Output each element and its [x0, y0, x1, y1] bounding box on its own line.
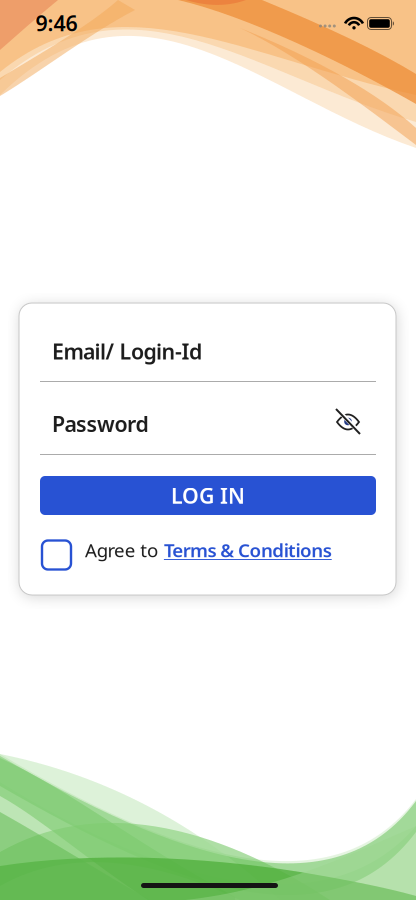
- staticText: Agree to: [85, 537, 158, 562]
- staticText: LOG IN: [171, 481, 245, 510]
- button[interactable]: LOG IN: [40, 476, 376, 515]
- button[interactable]: Email/ Login-Id text field: [40, 336, 376, 382]
- staticText: Password: [52, 409, 148, 438]
- staticText: Terms & Conditions: [164, 537, 332, 562]
- button[interactable]: Agree to Terms & Conditions checkbox: [42, 540, 71, 569]
- button[interactable]: Terms & Conditions: [164, 537, 332, 562]
- staticText: 9:46: [35, 9, 77, 37]
- staticText: Email/ Login-Id: [52, 337, 202, 365]
- button[interactable]: Password text field: [40, 408, 376, 455]
- button[interactable]: Show password: [331, 404, 365, 438]
